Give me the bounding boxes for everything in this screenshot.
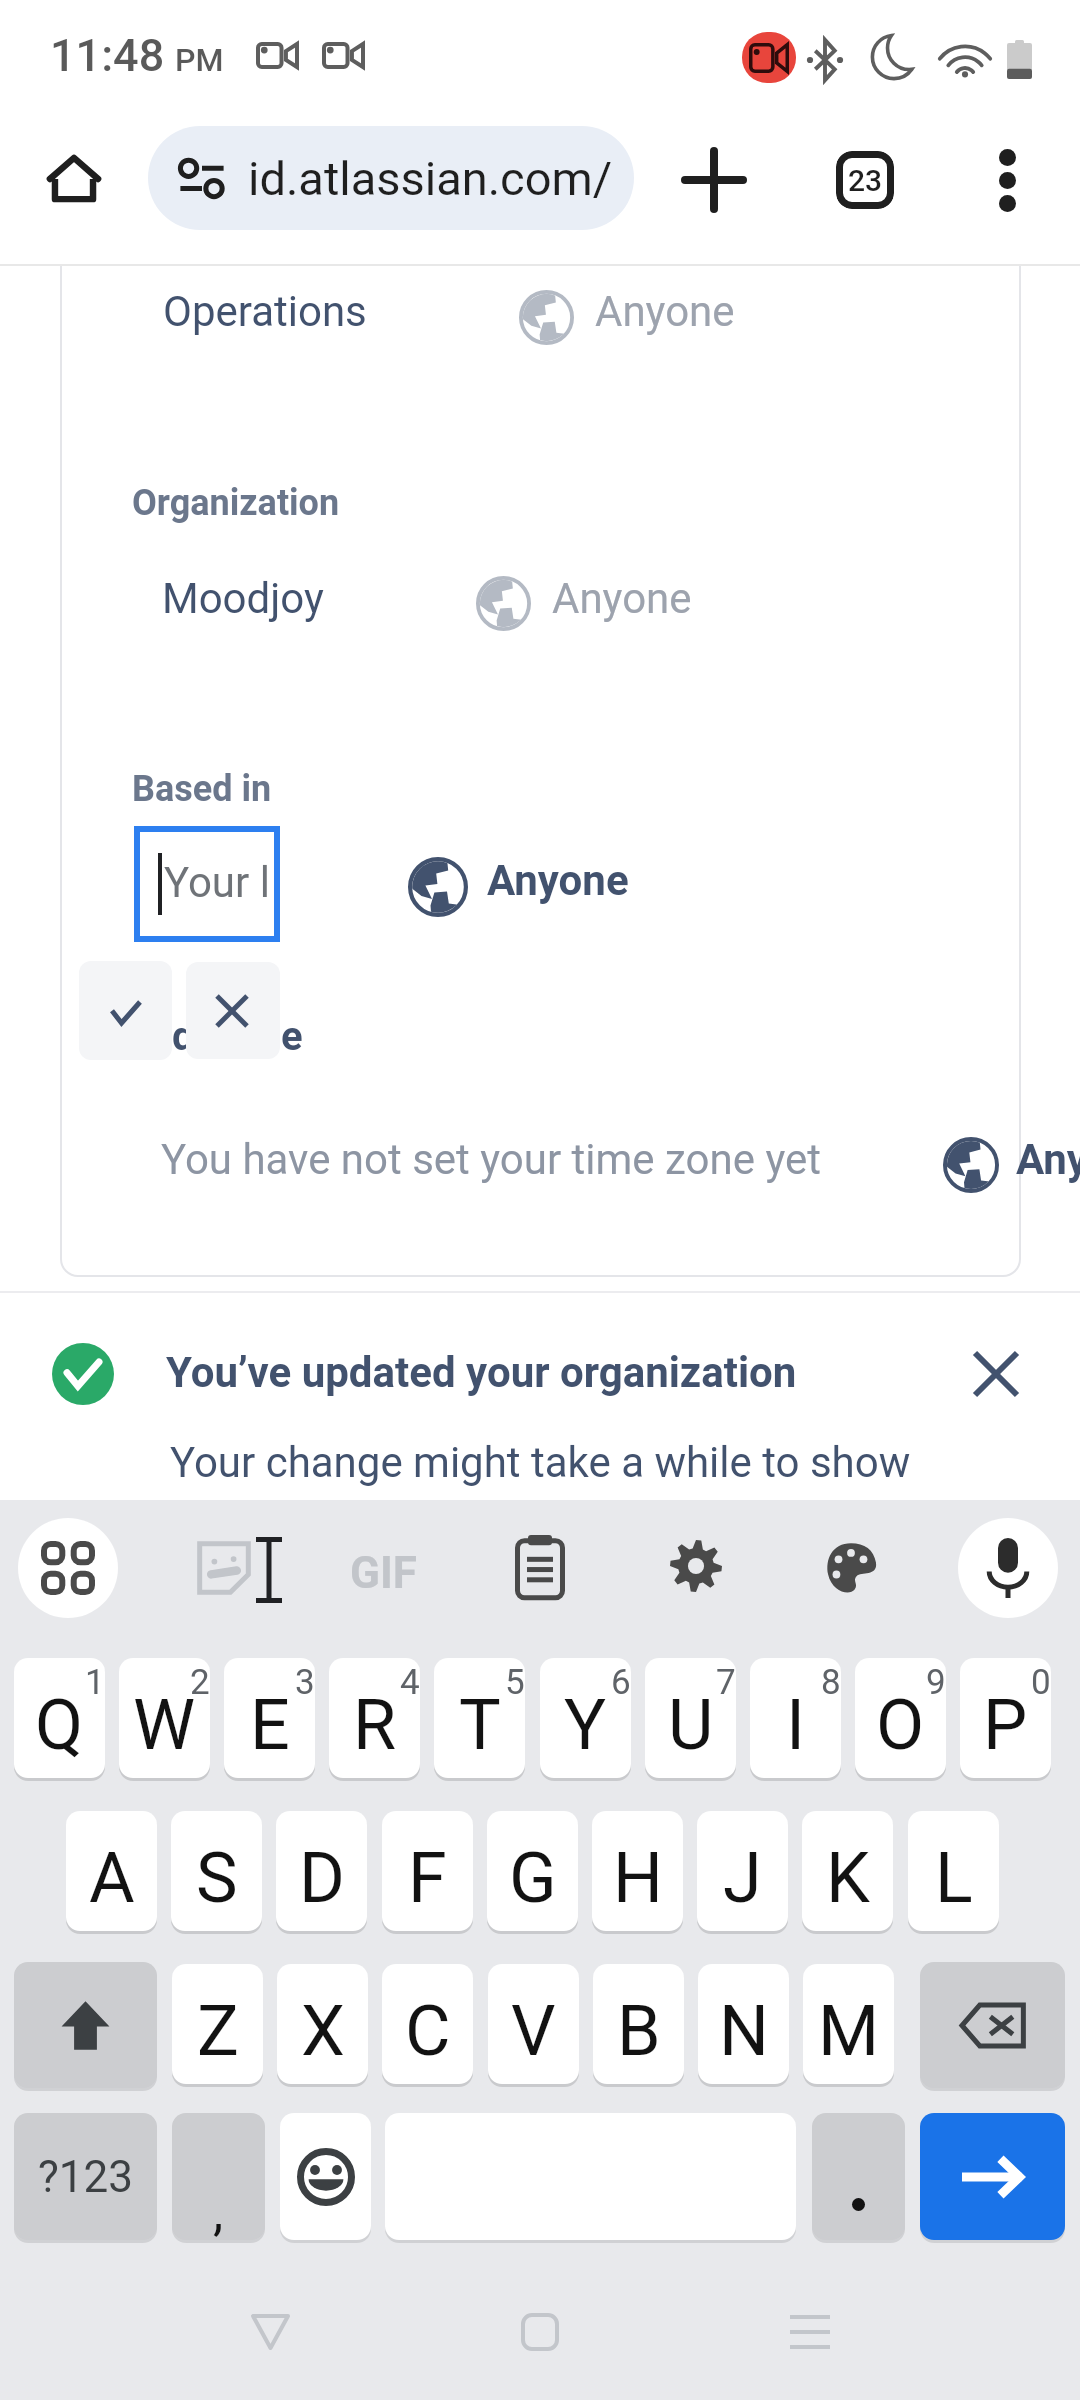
button[interactable]: I: [750, 1658, 841, 1778]
staticText: Your change might take a while to show: [170, 1438, 911, 1487]
staticText: 5: [505, 1662, 525, 1703]
staticText: Based in: [132, 768, 272, 810]
staticText: 4: [400, 1662, 420, 1703]
button[interactable]: id.atlassian.com/: [148, 126, 634, 230]
staticText: 6: [611, 1662, 631, 1703]
button[interactable]: Stickers: [190, 1534, 258, 1602]
button[interactable]: L: [908, 1811, 999, 1931]
staticText: F: [408, 1837, 447, 1919]
staticText: P: [983, 1684, 1028, 1766]
staticText: Organization: [132, 482, 340, 524]
button[interactable]: ,: [172, 2113, 265, 2240]
staticText: You’ve updated your organization: [166, 1348, 797, 1397]
button[interactable]: N: [698, 1964, 789, 2084]
staticText: Operations: [163, 287, 367, 336]
button[interactable]: K: [802, 1811, 893, 1931]
button[interactable]: Recents: [770, 2292, 850, 2372]
staticText: Anyone: [552, 574, 692, 623]
button[interactable]: Home: [500, 2292, 580, 2372]
staticText: U: [668, 1684, 714, 1766]
staticText: PM: [175, 41, 224, 79]
button[interactable]: A: [66, 1811, 157, 1931]
staticText: R: [353, 1684, 397, 1766]
staticText: S: [196, 1837, 238, 1919]
staticText: W: [133, 1684, 196, 1766]
staticText: 9: [926, 1662, 946, 1703]
button[interactable]: Settings: [661, 1531, 731, 1601]
button[interactable]: Clipboard: [505, 1532, 575, 1602]
button[interactable]: Tabs: [825, 140, 905, 220]
button[interactable]: More options: [967, 140, 1047, 220]
staticText: d: [172, 1013, 195, 1060]
button[interactable]: Emoji: [280, 2113, 371, 2240]
button[interactable]: V: [488, 1964, 579, 2084]
button[interactable]: M: [803, 1964, 894, 2084]
button[interactable]: Shift: [14, 1962, 157, 2088]
staticText: 7: [716, 1662, 736, 1703]
button[interactable]: S: [171, 1811, 262, 1931]
button[interactable]: X: [277, 1964, 368, 2084]
button[interactable]: B: [593, 1964, 684, 2084]
staticText: B: [617, 1990, 661, 2072]
staticText: T: [459, 1684, 501, 1766]
button[interactable]: Themes: [816, 1533, 886, 1603]
button[interactable]: J: [697, 1811, 788, 1931]
button[interactable]: F: [382, 1811, 473, 1931]
button[interactable]: Y: [540, 1658, 631, 1778]
staticText: 1: [85, 1662, 105, 1703]
staticText: Any: [1016, 1135, 1080, 1184]
button[interactable]: [812, 2113, 905, 2240]
button[interactable]: P: [960, 1658, 1051, 1778]
staticText: 11:48: [50, 29, 165, 82]
staticText: 2: [190, 1662, 210, 1703]
button[interactable]: Confirm: [79, 961, 172, 1060]
staticText: M: [818, 1990, 880, 2072]
button[interactable]: C: [382, 1964, 473, 2084]
button[interactable]: Apps: [18, 1518, 118, 1618]
staticText: 3: [295, 1662, 315, 1703]
button[interactable]: Q: [14, 1658, 105, 1778]
staticText: I: [786, 1684, 806, 1766]
button[interactable]: Your l: [134, 826, 280, 942]
staticText: V: [511, 1990, 556, 2072]
button[interactable]: D: [276, 1811, 367, 1931]
staticText: L: [935, 1837, 973, 1919]
staticText: ?123: [38, 2151, 133, 2203]
staticText: J: [723, 1837, 762, 1919]
button[interactable]: U: [645, 1658, 736, 1778]
button[interactable]: Back: [230, 2292, 310, 2372]
staticText: E: [250, 1684, 290, 1766]
staticText: O: [876, 1684, 925, 1766]
staticText: Your l: [164, 858, 270, 907]
staticText: e: [281, 1013, 303, 1060]
button[interactable]: Enter: [920, 2113, 1065, 2240]
staticText: Anyone: [487, 856, 629, 905]
staticText: id.atlassian.com/: [248, 151, 613, 206]
button[interactable]: ?123: [14, 2113, 157, 2240]
staticText: Y: [564, 1684, 607, 1766]
staticText: K: [826, 1837, 870, 1919]
staticText: 23: [848, 163, 883, 198]
button[interactable]: Voice input: [958, 1518, 1058, 1618]
button[interactable]: G: [487, 1811, 578, 1931]
button[interactable]: T: [434, 1658, 525, 1778]
staticText: X: [301, 1990, 345, 2072]
button[interactable]: Home: [36, 140, 112, 216]
button[interactable]: Dismiss: [955, 1333, 1037, 1415]
button[interactable]: Z: [172, 1964, 263, 2084]
button[interactable]: Backspace: [920, 1962, 1065, 2088]
staticText: You have not set your time zone yet: [161, 1135, 822, 1184]
button[interactable]: Cancel: [186, 962, 280, 1059]
button[interactable]: O: [855, 1658, 946, 1778]
staticText: 8: [821, 1662, 841, 1703]
button[interactable]: E: [224, 1658, 315, 1778]
button[interactable]: R: [329, 1658, 420, 1778]
button[interactable]: H: [592, 1811, 683, 1931]
staticText: Moodjoy: [162, 574, 324, 623]
staticText: H: [613, 1837, 663, 1919]
staticText: Q: [35, 1684, 84, 1766]
button[interactable]: W: [119, 1658, 210, 1778]
staticText: C: [405, 1990, 451, 2072]
button[interactable]: New tab: [674, 140, 754, 220]
